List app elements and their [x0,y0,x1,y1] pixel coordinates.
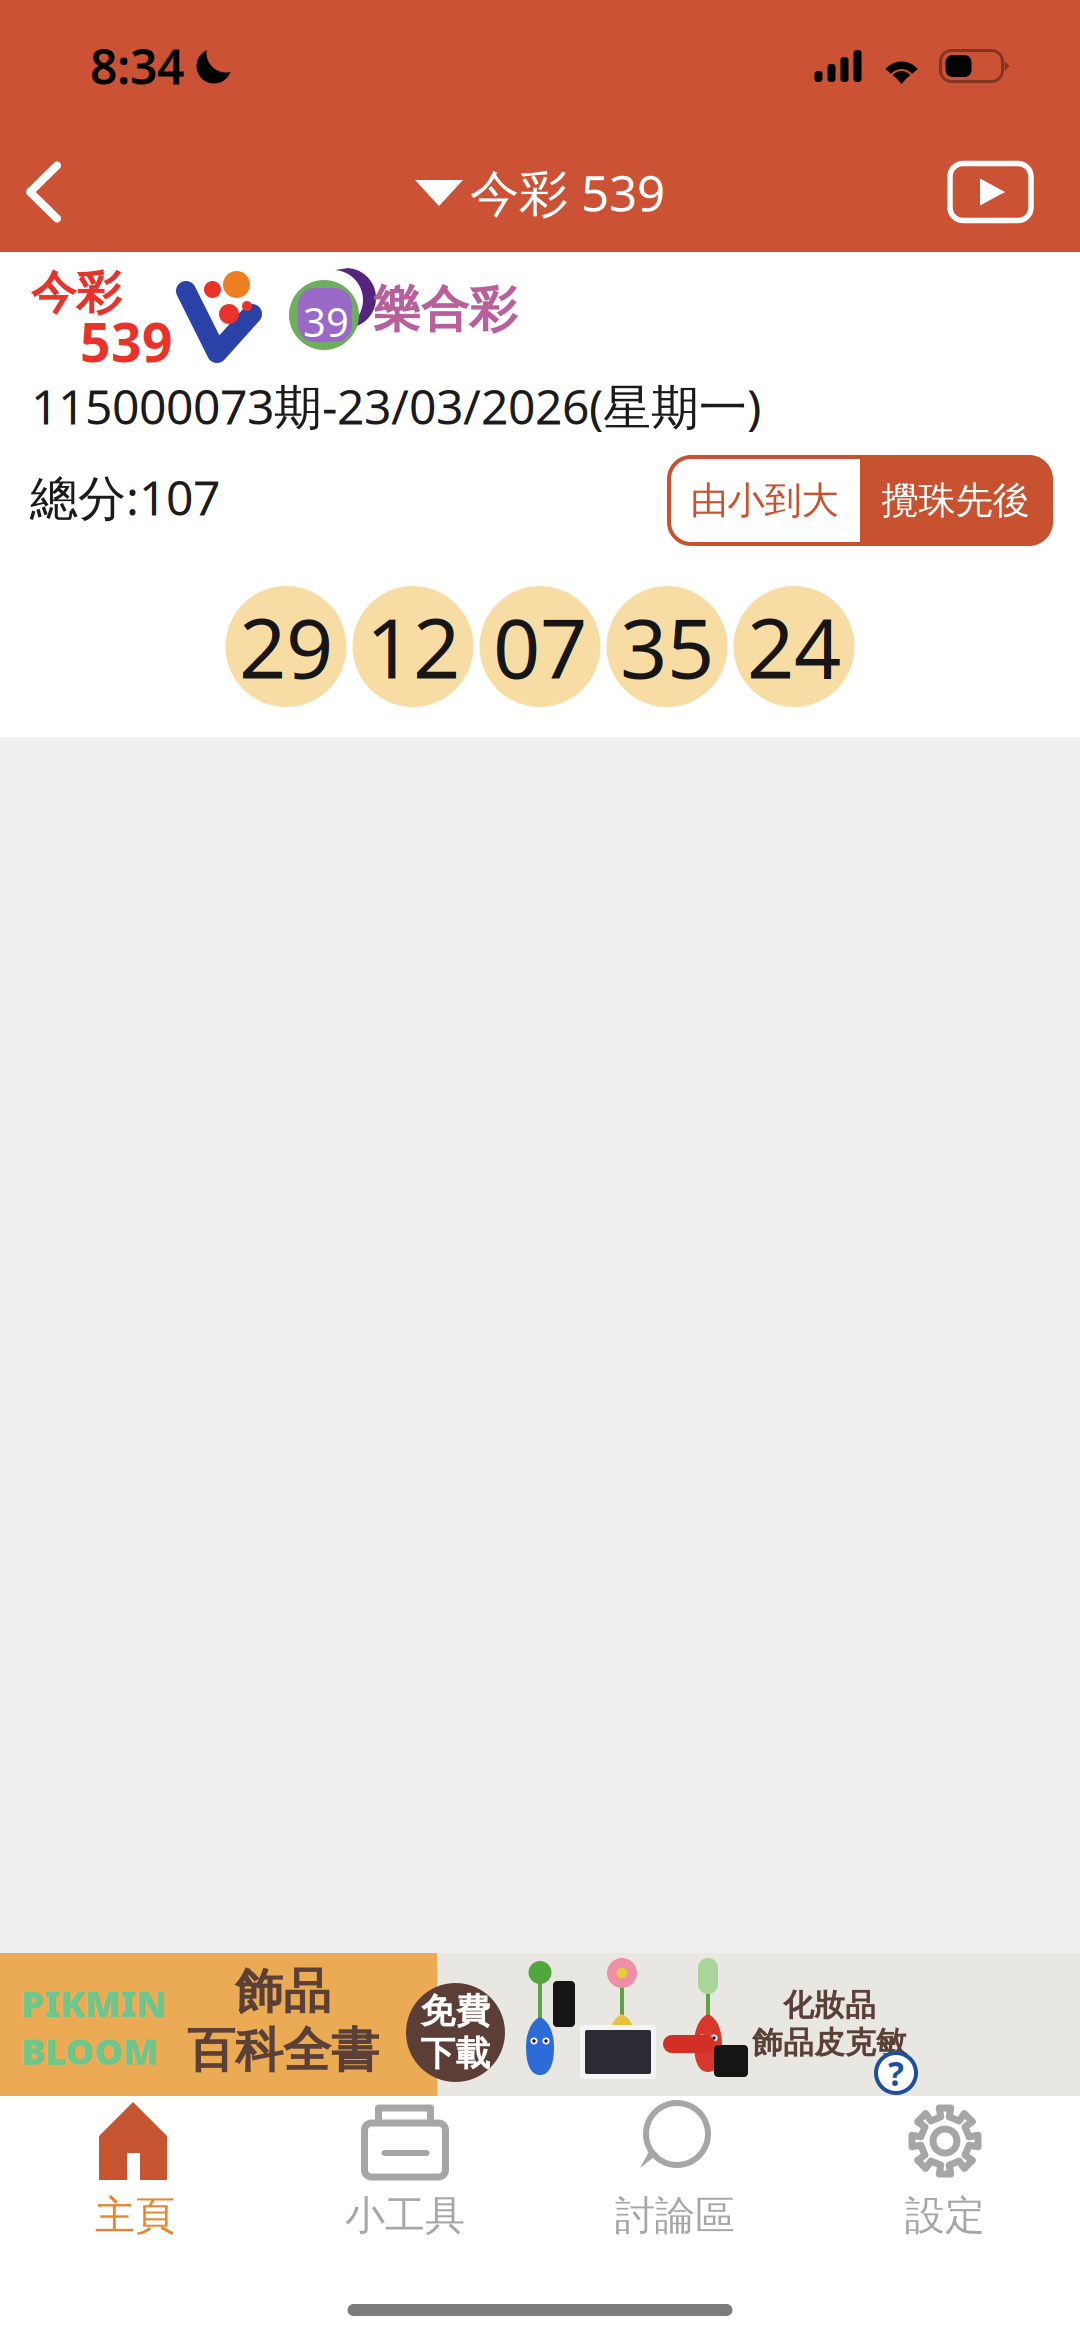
staticText: 飾品皮克敏 [752,2024,907,2062]
staticText: 攪珠先後 [881,478,1029,523]
staticText: 07 [493,592,587,701]
staticText: 24 [747,592,841,701]
button[interactable]: 由小到大 [669,457,860,544]
staticText: 35 [620,592,714,701]
staticText: 免費 [420,1990,490,2032]
staticText: 今彩 539 [470,159,665,225]
staticText: 討論區 [615,2191,735,2240]
button[interactable]: PIKMIN [0,1953,1080,2096]
staticText: 今彩 [31,265,121,321]
staticText: 百科全書 [187,2021,379,2080]
button[interactable]: 設定 [810,2096,1080,2286]
staticText: ? [888,2051,904,2095]
button[interactable]: 討論區 [540,2096,810,2286]
button[interactable]: 主頁 [0,2096,270,2286]
button[interactable]: 小工具 [270,2096,540,2286]
staticText: 115000073期-23/03/2026(星期一) [31,374,761,438]
staticText: BLOOM [21,2027,158,2075]
staticText: 29 [239,592,333,701]
button[interactable]: Video [910,132,1080,252]
staticText: 8:34 [90,34,184,98]
staticText: 539 [80,306,173,377]
staticText: 總分:107 [30,465,220,529]
staticText: 12 [366,592,460,701]
staticText: 飾品 [235,1962,331,2021]
staticText: 由小到大 [690,478,838,523]
button[interactable]: 今彩 539 [401,132,679,252]
staticText: 樂合彩 [373,280,517,339]
staticText: 39 [303,295,349,348]
staticText: 設定 [905,2191,985,2240]
staticText: 下載 [420,2032,490,2075]
staticText: 主頁 [95,2191,175,2240]
button[interactable]: 攪珠先後 [860,457,1051,544]
button[interactable]: Back [0,132,101,252]
staticText: 化妝品 [783,1986,876,2024]
staticText: PIKMIN [21,1979,166,2027]
staticText: 小工具 [345,2191,465,2240]
